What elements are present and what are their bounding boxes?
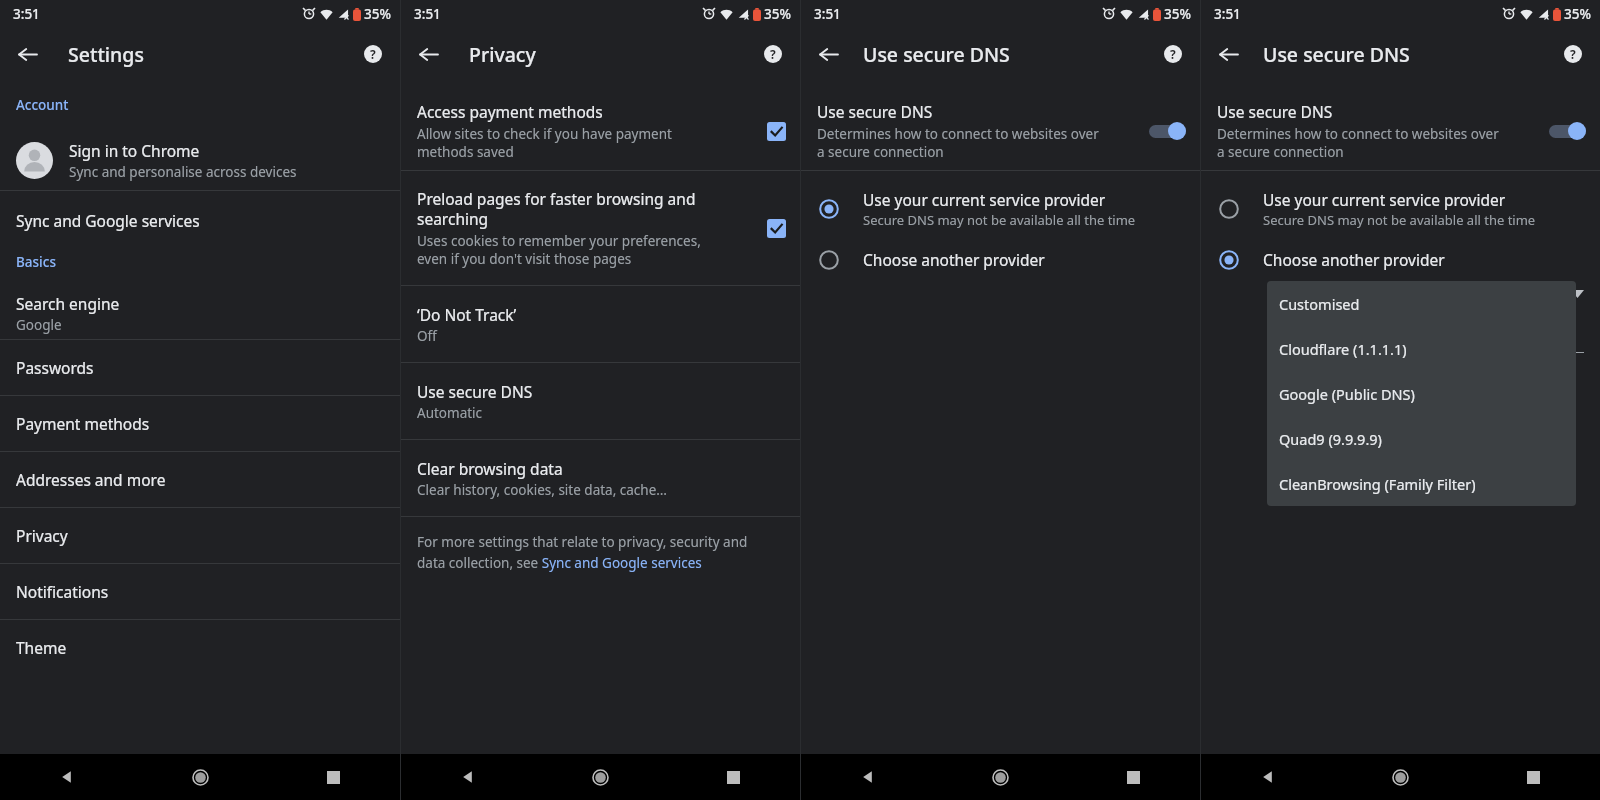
staticText: 3:51 [1214, 5, 1241, 23]
button[interactable]: Passwords [0, 340, 400, 395]
button[interactable]: For more settings that relate to privacy… [417, 533, 748, 572]
button[interactable]: Clear browsing data [401, 440, 800, 516]
button[interactable]: Help [358, 39, 388, 69]
button[interactable]: Use your current service provider [1201, 185, 1600, 233]
button[interactable]: Quad9 (9.9.9.9) [1267, 416, 1576, 461]
staticText: Sign in to Chrome [69, 140, 200, 161]
button[interactable]: Back [801, 754, 934, 800]
staticText: Sync and personalise across devices [69, 163, 297, 181]
staticText: ‘Do Not Track’ [417, 304, 517, 325]
button[interactable]: Theme [0, 620, 400, 675]
button[interactable]: Back [1201, 754, 1334, 800]
staticText: Use secure DNS [863, 41, 1010, 68]
staticText: Passwords [16, 357, 94, 378]
staticText: Google [16, 316, 62, 334]
staticText: 35% [1164, 5, 1191, 23]
button[interactable]: Choose another provider [801, 245, 1200, 274]
staticText: Secure DNS may not be available all the … [1263, 211, 1536, 229]
button[interactable]: CleanBrowsing (Family Filter) [1267, 461, 1576, 506]
staticText: Use your current service provider [1263, 189, 1506, 210]
staticText: Use secure DNS [417, 381, 533, 402]
staticText: Search engine [16, 293, 120, 314]
button[interactable]: ‘Do Not Track’ [401, 286, 800, 362]
staticText: Determines how to connect to websites ov… [817, 125, 1099, 161]
staticText: ? [1170, 46, 1176, 62]
button[interactable]: Recent apps [1067, 754, 1200, 800]
staticText: CleanBrowsing (Family Filter) [1279, 474, 1476, 494]
staticText: 3:51 [13, 5, 40, 23]
button[interactable]: Home [534, 754, 667, 800]
button[interactable]: Help [1558, 39, 1588, 69]
staticText: Google (Public DNS) [1279, 384, 1415, 404]
button[interactable]: Home [1334, 754, 1467, 800]
staticText: Uses cookies to remember your preference… [417, 232, 701, 268]
staticText: Addresses and more [16, 469, 166, 490]
staticText: Clear history, cookies, site data, cache… [417, 481, 667, 499]
staticText: Notifications [16, 581, 109, 602]
button[interactable]: Help [1158, 39, 1188, 69]
staticText: Clear browsing data [417, 458, 563, 479]
staticText: Use secure DNS [817, 101, 933, 122]
staticText: Use your current service provider [863, 189, 1106, 210]
button[interactable]: Access payment methods [401, 92, 800, 170]
staticText: Payment methods [16, 413, 150, 434]
staticText: Preload pages for faster browsing and se… [417, 188, 696, 229]
button[interactable]: Use secure DNS [401, 363, 800, 439]
staticText: 35% [764, 5, 791, 23]
staticText: Sync and Google services [16, 210, 200, 231]
staticText: Access payment methods [417, 101, 603, 122]
button[interactable]: Google (Public DNS) [1267, 371, 1576, 416]
button[interactable]: Use your current service provider [801, 185, 1200, 233]
staticText: Secure DNS may not be available all the … [863, 211, 1136, 229]
button[interactable]: Search engine [0, 287, 400, 339]
staticText: ? [1570, 46, 1576, 62]
staticText: Automatic [417, 404, 483, 422]
button[interactable]: Help [758, 39, 788, 69]
button[interactable]: Back [1209, 35, 1247, 73]
button[interactable]: Home [934, 754, 1067, 800]
button[interactable]: Back [809, 35, 847, 73]
staticText: Privacy [16, 525, 68, 546]
button[interactable]: Sync and Google services [0, 191, 400, 249]
button[interactable]: Home [134, 754, 267, 800]
staticText: 3:51 [414, 5, 441, 23]
staticText: ? [370, 46, 376, 62]
button[interactable]: Customised [1267, 281, 1576, 326]
staticText: 35% [364, 5, 391, 23]
button[interactable]: Preload pages for faster browsing and se… [401, 171, 800, 285]
button[interactable]: Recent apps [1467, 754, 1600, 800]
staticText: Quad9 (9.9.9.9) [1279, 429, 1382, 449]
button[interactable]: Addresses and more [0, 452, 400, 507]
staticText: Account [16, 96, 69, 114]
staticText: Theme [16, 637, 67, 658]
button[interactable]: Back [0, 754, 133, 800]
button[interactable]: Use secure DNS [801, 92, 1200, 170]
button[interactable]: Back [401, 754, 534, 800]
staticText: Choose another provider [863, 249, 1045, 270]
staticText: Cloudflare (1.1.1.1) [1279, 339, 1407, 359]
staticText: Determines how to connect to websites ov… [1217, 125, 1499, 161]
staticText: Basics [16, 253, 56, 271]
staticText: 35% [1564, 5, 1591, 23]
button[interactable]: Back [8, 35, 46, 73]
button[interactable]: Back [409, 35, 447, 73]
staticText: Use secure DNS [1263, 41, 1410, 68]
staticText: Privacy [469, 41, 536, 68]
staticText: Choose another provider [1263, 249, 1445, 270]
staticText: Allow sites to check if you have payment… [417, 125, 672, 161]
button[interactable]: Use secure DNS [1201, 92, 1600, 170]
staticText: ? [770, 46, 776, 62]
staticText: Off [417, 327, 437, 345]
button[interactable]: Choose another provider [1201, 245, 1600, 274]
staticText: Use secure DNS [1217, 101, 1333, 122]
button[interactable]: Privacy [0, 508, 400, 563]
staticText: Settings [68, 41, 144, 68]
button[interactable]: Recent apps [667, 754, 800, 800]
button[interactable]: Notifications [0, 564, 400, 619]
button[interactable]: Cloudflare (1.1.1.1) [1267, 326, 1576, 371]
button[interactable]: Sign in to Chrome [0, 130, 400, 190]
button[interactable]: Payment methods [0, 396, 400, 451]
button[interactable]: Recent apps [267, 754, 400, 800]
staticText: Customised [1279, 294, 1360, 314]
staticText: 3:51 [814, 5, 841, 23]
